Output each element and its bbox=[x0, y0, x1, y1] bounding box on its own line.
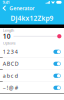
staticText: Length bbox=[3, 28, 14, 33]
staticText: 1 2 3 4 bbox=[3, 48, 18, 55]
button[interactable]: Back bbox=[2, 5, 7, 11]
staticText: 9:41 bbox=[3, 0, 10, 5]
button[interactable]: ~ ! @ # bbox=[0, 82, 64, 94]
staticText: ~ ! @ # bbox=[3, 84, 18, 91]
staticText: 10 bbox=[3, 32, 11, 41]
button[interactable]: A B C D bbox=[0, 58, 64, 70]
staticText: a b c d bbox=[3, 72, 18, 79]
staticText: Generator bbox=[9, 5, 34, 12]
button[interactable]: a b c d bbox=[0, 70, 64, 82]
staticText: Options bbox=[3, 40, 16, 46]
staticText: A B C D bbox=[3, 60, 19, 67]
staticText: Dj4kx12Zkp9 bbox=[10, 14, 53, 22]
button[interactable]: 1 2 3 4 bbox=[0, 46, 64, 58]
